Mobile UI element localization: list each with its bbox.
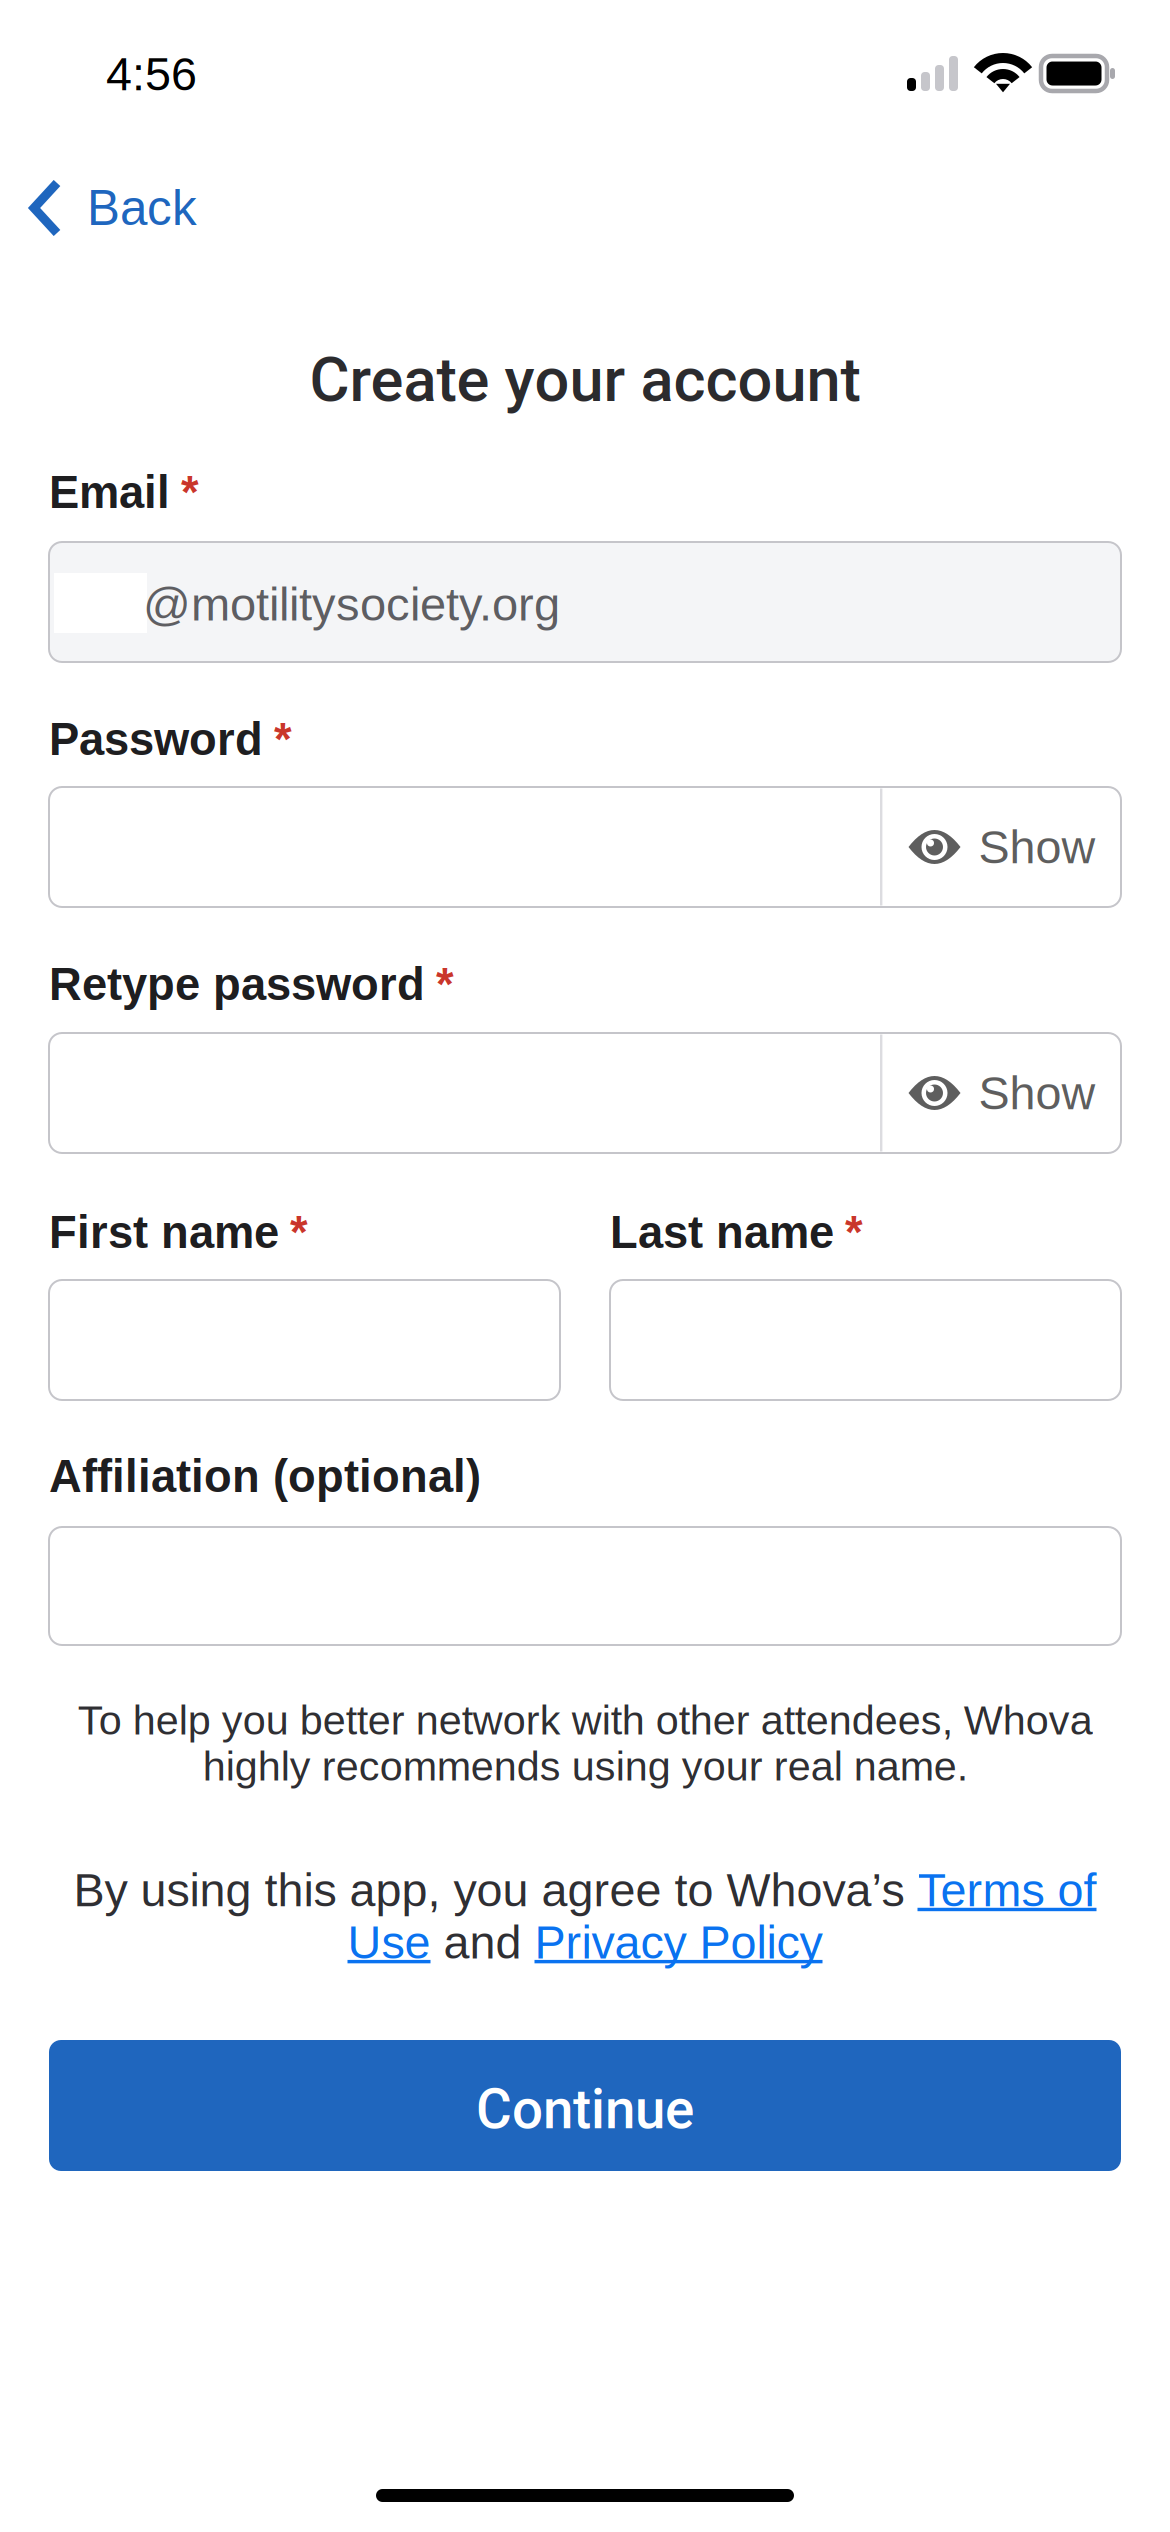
staticText: Retype password bbox=[49, 959, 425, 1010]
staticText: * bbox=[290, 1207, 308, 1258]
staticText: Affiliation (optional) bbox=[49, 1451, 481, 1502]
button[interactable]: Use bbox=[347, 1916, 430, 1968]
button[interactable]: Terms of bbox=[917, 1864, 1096, 1916]
staticText: Privacy Policy bbox=[534, 1916, 822, 1968]
staticText: Use bbox=[347, 1916, 430, 1968]
button[interactable]: Back bbox=[0, 162, 231, 254]
staticText: By using this app, you agree to Whova’s bbox=[73, 1864, 917, 1916]
staticText: Create your account bbox=[309, 344, 860, 416]
button[interactable]: Show bbox=[882, 1033, 1121, 1153]
staticText: * bbox=[845, 1207, 863, 1258]
staticText: First name bbox=[49, 1207, 279, 1258]
staticText: Password bbox=[49, 714, 263, 765]
staticText: Show bbox=[978, 1067, 1095, 1119]
staticText: 4:56 bbox=[106, 48, 197, 100]
staticText: Back bbox=[87, 180, 197, 235]
staticText: Last name bbox=[610, 1207, 834, 1258]
staticText: * bbox=[181, 467, 199, 518]
staticText: To help you better network with other at… bbox=[77, 1697, 1092, 1789]
button[interactable]: Continue bbox=[49, 2040, 1121, 2171]
button[interactable]: Show bbox=[882, 787, 1121, 907]
staticText: Terms of bbox=[917, 1864, 1096, 1916]
staticText: @motilitysociety.org bbox=[143, 578, 560, 631]
staticText: Email bbox=[49, 467, 170, 518]
staticText: and bbox=[430, 1916, 534, 1968]
staticText: * bbox=[274, 714, 292, 765]
staticText: * bbox=[436, 959, 454, 1010]
staticText: Continue bbox=[476, 2077, 694, 2142]
button[interactable]: Privacy Policy bbox=[534, 1916, 822, 1968]
staticText: Show bbox=[978, 821, 1095, 873]
